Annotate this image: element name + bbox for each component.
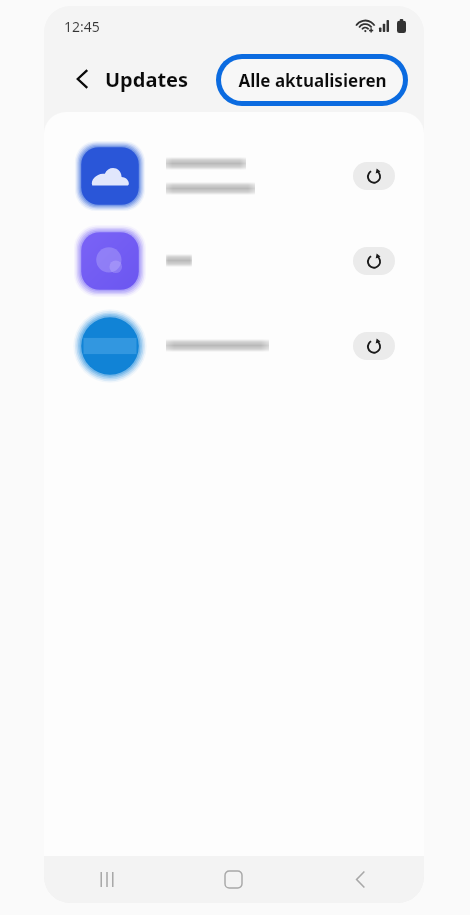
button[interactable]: Update app xyxy=(353,332,395,360)
staticText: 12:45 xyxy=(64,17,100,36)
button[interactable]: Back xyxy=(60,57,104,101)
button[interactable]: Alle aktualisieren xyxy=(216,54,408,106)
button[interactable]: Update app xyxy=(44,303,424,388)
button[interactable]: Recent apps xyxy=(44,856,170,903)
button[interactable]: Back xyxy=(297,856,424,903)
button[interactable]: Update app xyxy=(44,133,424,218)
staticText: Alle aktualisieren xyxy=(238,69,387,92)
staticText: Updates xyxy=(105,66,189,93)
button[interactable]: Update app xyxy=(353,247,395,275)
button[interactable]: Home xyxy=(170,856,297,903)
button[interactable]: Update app xyxy=(44,218,424,303)
button[interactable]: Update app xyxy=(353,162,395,190)
